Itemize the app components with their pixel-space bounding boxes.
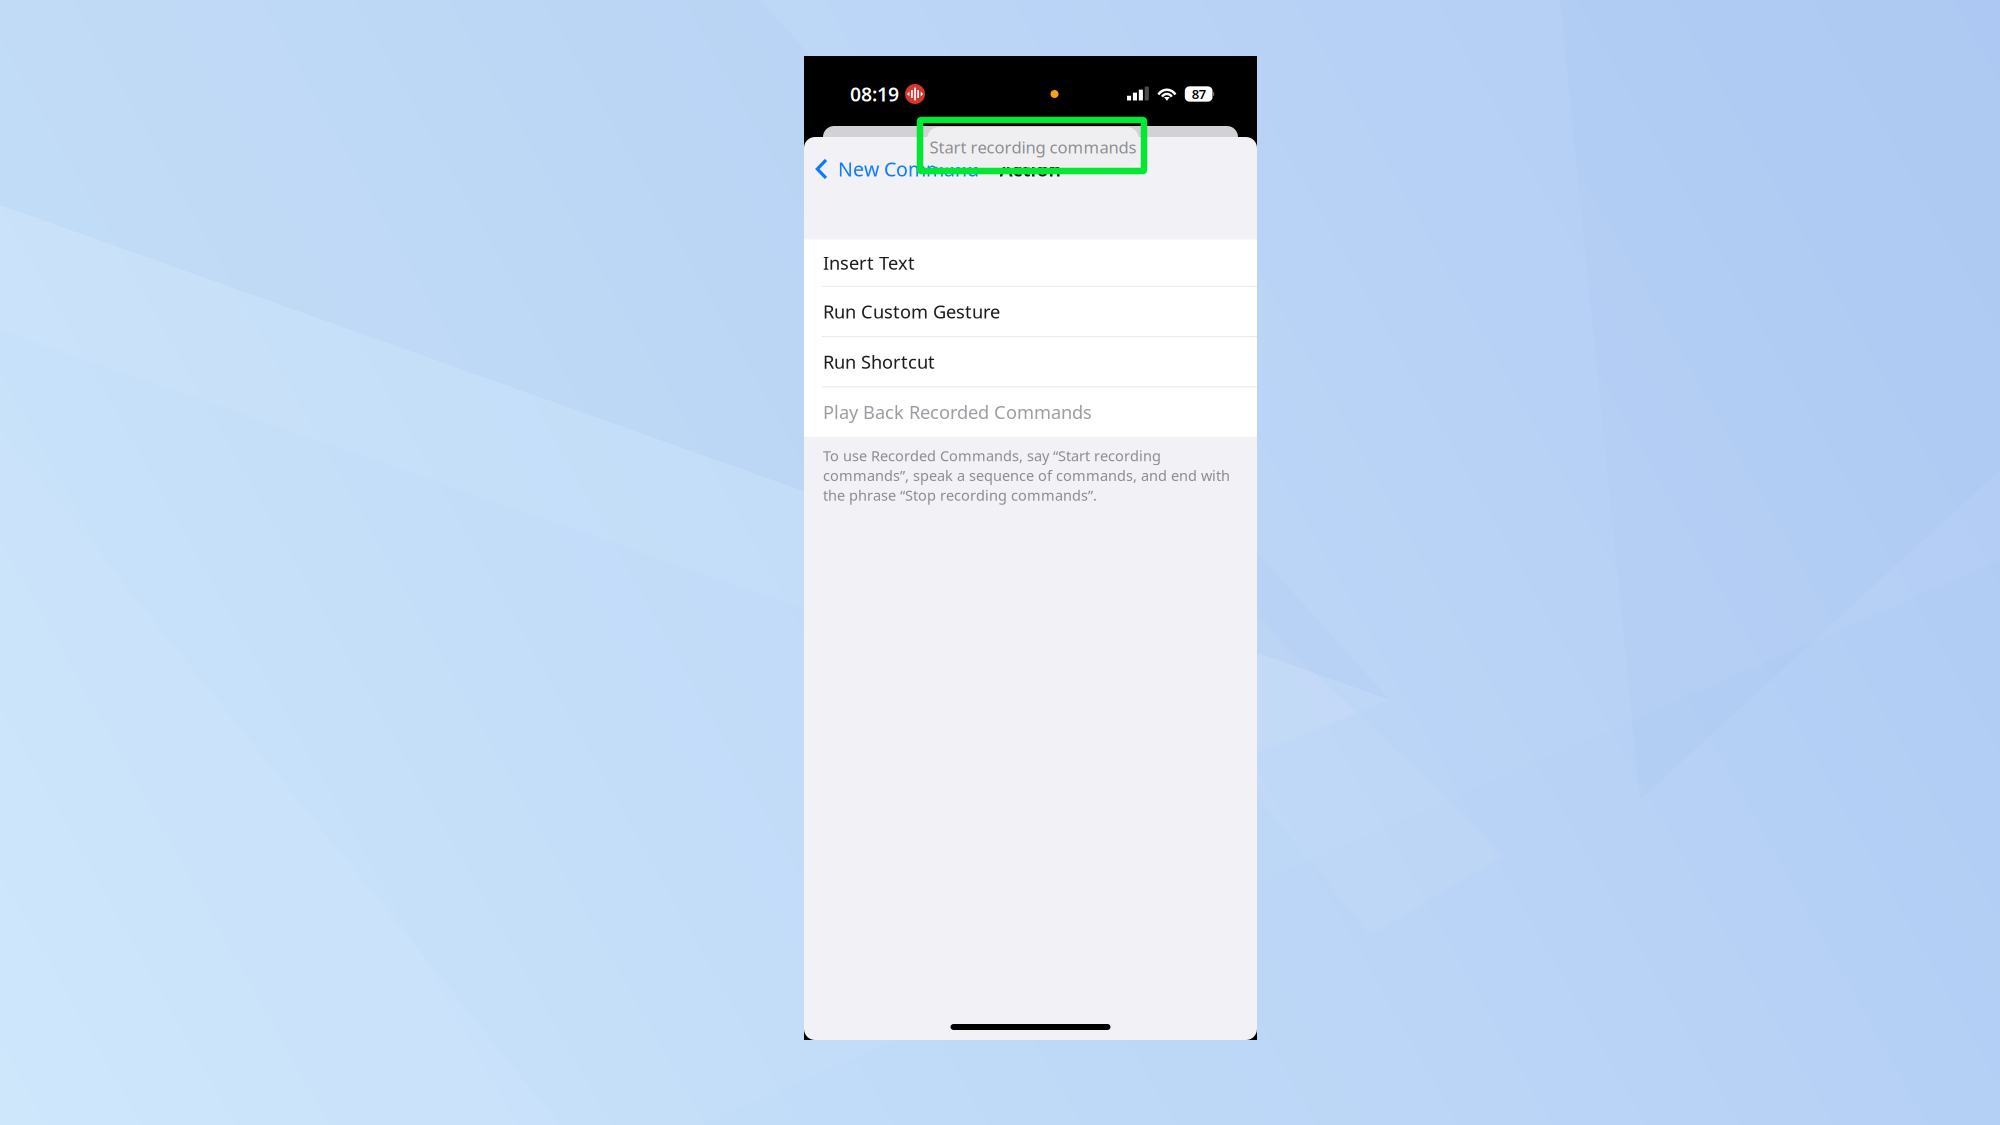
button[interactable]: Run Shortcut xyxy=(804,337,1257,386)
staticText: Action xyxy=(999,156,1061,182)
staticText: Insert Text xyxy=(823,250,915,275)
staticText: Start recording commands xyxy=(929,136,1136,158)
staticText: Run Custom Gesture xyxy=(823,299,1000,324)
button[interactable]: Insert Text xyxy=(804,239,1257,286)
staticText: Play Back Recorded Commands xyxy=(823,400,1092,424)
button[interactable]: Run Custom Gesture xyxy=(804,287,1257,336)
staticText: New Command xyxy=(838,156,979,182)
staticText: To use Recorded Commands, say “Start rec… xyxy=(823,446,1230,505)
staticText: 87 xyxy=(1192,85,1206,103)
staticText: Run Shortcut xyxy=(823,349,935,374)
button[interactable]: Play Back Recorded Commands xyxy=(804,387,1257,437)
button[interactable]: New Command xyxy=(804,146,979,192)
staticText: 08:19 xyxy=(850,81,899,107)
